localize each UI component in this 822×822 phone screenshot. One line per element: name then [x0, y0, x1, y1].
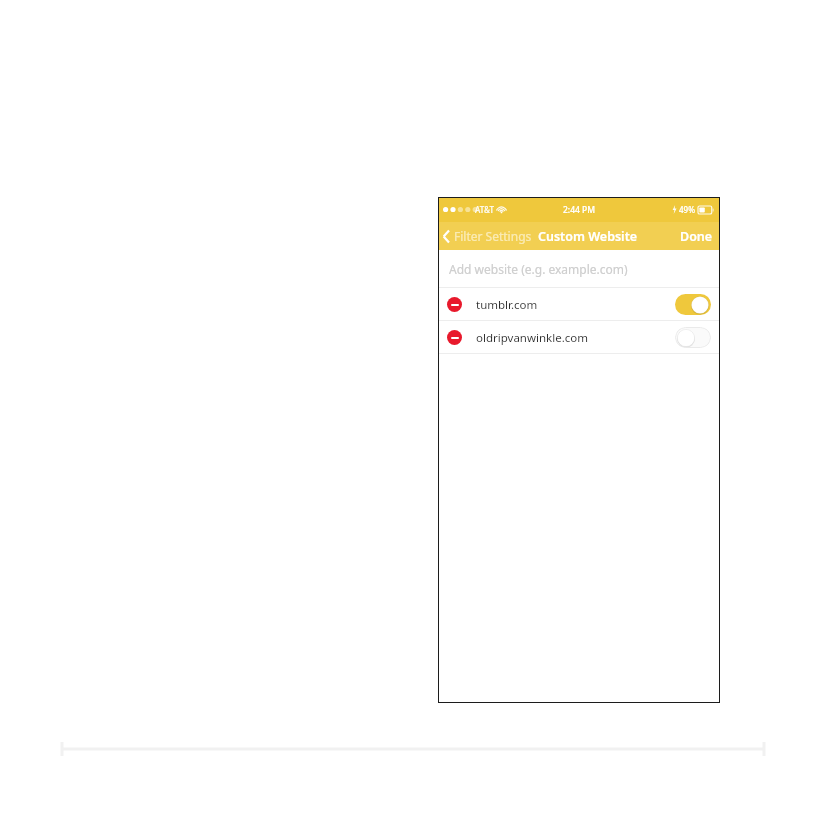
staticText: Filter Settings	[454, 228, 532, 244]
button[interactable]: Filter Settings	[438, 222, 536, 250]
staticText: 2:44 PM	[563, 204, 596, 216]
staticText: Custom Website	[538, 228, 638, 245]
staticText: 49%	[679, 204, 695, 215]
staticText: Add website (e.g. example.com)	[449, 261, 628, 277]
button[interactable]: Enabled	[675, 294, 711, 315]
button[interactable]: Remove oldripvanwinkle.com	[447, 330, 462, 345]
button[interactable]: Add website (e.g. example.com)	[438, 250, 720, 288]
staticText: oldripvanwinkle.com	[476, 330, 588, 346]
staticText: AT&T	[475, 204, 494, 215]
button[interactable]: Remove tumblr.com	[447, 297, 462, 312]
button[interactable]: Disabled	[675, 327, 711, 348]
button[interactable]: Done	[673, 222, 720, 250]
staticText: Done	[680, 228, 713, 245]
staticText: tumblr.com	[476, 297, 538, 313]
button[interactable]: Remove tumblr.com	[438, 288, 720, 321]
button[interactable]: Remove oldripvanwinkle.com	[438, 321, 720, 354]
